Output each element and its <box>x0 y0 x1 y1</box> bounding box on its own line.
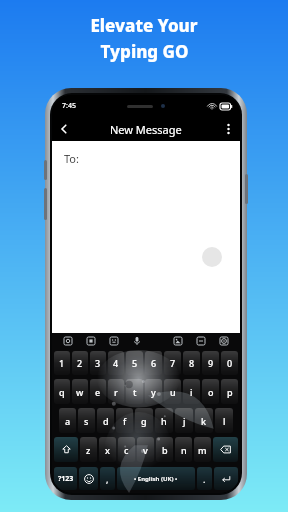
staticText: c <box>124 444 129 456</box>
button[interactable]: Back <box>52 117 76 141</box>
staticText: e <box>95 386 101 398</box>
staticText: 9 <box>208 357 214 369</box>
button[interactable]: ?123 <box>54 467 77 490</box>
staticText: m <box>198 444 207 456</box>
button[interactable]: n <box>175 437 192 462</box>
button[interactable]: f <box>116 408 133 433</box>
staticText: . <box>203 473 206 485</box>
button[interactable]: More options <box>216 117 240 141</box>
staticText: k <box>201 415 207 427</box>
button[interactable]: o <box>202 379 219 404</box>
staticText: 8 <box>189 357 195 369</box>
button[interactable]: 0 <box>221 351 238 375</box>
staticText: 4 <box>113 357 119 369</box>
button[interactable]: Space, English (UK) <box>117 467 195 490</box>
button[interactable]: u <box>164 379 181 404</box>
button[interactable]: 9 <box>202 351 219 375</box>
button[interactable]: r <box>108 379 124 404</box>
staticText: 6 <box>151 357 157 369</box>
staticText: j <box>183 415 186 427</box>
staticText: i <box>190 386 193 398</box>
button[interactable]: v <box>137 437 154 462</box>
staticText: l <box>223 415 226 427</box>
button[interactable]: m <box>194 437 211 462</box>
staticText: g <box>141 415 147 427</box>
staticText: 1 <box>59 357 65 369</box>
button[interactable]: e <box>90 379 106 404</box>
staticText: b <box>162 444 168 456</box>
button[interactable]: t <box>126 379 143 404</box>
staticText: 2 <box>77 357 83 369</box>
staticText: h <box>161 415 167 427</box>
button[interactable]: y <box>145 379 162 404</box>
button[interactable]: Theme <box>62 335 74 347</box>
button[interactable]: 7 <box>164 351 181 375</box>
button[interactable]: 6 <box>145 351 162 375</box>
staticText: f <box>123 415 127 427</box>
button[interactable]: w <box>72 379 88 404</box>
button[interactable]: 8 <box>183 351 200 375</box>
button[interactable]: l <box>215 408 233 433</box>
button[interactable]: Clipboard <box>85 335 97 347</box>
button[interactable]: h <box>155 408 173 433</box>
button[interactable]: i <box>183 379 200 404</box>
staticText: d <box>103 415 109 427</box>
button[interactable]: a <box>59 408 76 433</box>
button[interactable]: k <box>195 408 213 433</box>
staticText: 7:45 <box>62 101 76 111</box>
staticText: Typing GO <box>100 40 189 63</box>
button[interactable]: z <box>80 437 97 462</box>
button[interactable]: Shift <box>54 437 78 462</box>
staticText: , <box>106 473 109 485</box>
button[interactable]: Backspace <box>213 437 238 462</box>
button[interactable]: b <box>156 437 173 462</box>
button[interactable]: j <box>175 408 193 433</box>
staticText: w <box>76 386 84 398</box>
button[interactable]: 4 <box>108 351 124 375</box>
button[interactable]: 3 <box>90 351 106 375</box>
button[interactable]: d <box>97 408 114 433</box>
button[interactable]: Comma <box>100 467 115 490</box>
staticText: n <box>181 444 187 456</box>
button[interactable]: Emoji <box>79 467 98 490</box>
button[interactable]: x <box>99 437 116 462</box>
button[interactable]: Enter <box>214 467 238 490</box>
button[interactable]: c <box>118 437 135 462</box>
button[interactable]: p <box>221 379 238 404</box>
staticText: To: <box>64 151 79 166</box>
button[interactable]: Sticker <box>108 335 120 347</box>
button[interactable]: Settings <box>218 335 230 347</box>
button[interactable]: 1 <box>54 351 70 375</box>
button[interactable]: s <box>78 408 95 433</box>
button[interactable]: g <box>135 408 153 433</box>
staticText: 3 <box>95 357 101 369</box>
button[interactable]: 2 <box>72 351 88 375</box>
staticText: t <box>133 386 137 398</box>
button[interactable]: q <box>54 379 70 404</box>
staticText: q <box>59 386 65 398</box>
staticText: 7 <box>170 357 176 369</box>
staticText: a <box>65 415 71 427</box>
staticText: 0 <box>227 357 233 369</box>
staticText: y <box>151 386 156 398</box>
staticText: v <box>143 444 148 456</box>
staticText: s <box>84 415 89 427</box>
button[interactable]: Period <box>197 467 212 490</box>
staticText: Elevate Your <box>90 14 198 37</box>
staticText: z <box>86 444 91 456</box>
staticText: New Message <box>110 122 182 137</box>
button[interactable]: Voice input <box>131 335 143 347</box>
button[interactable]: GIF <box>195 335 207 347</box>
staticText: 5 <box>132 357 138 369</box>
staticText: x <box>105 444 110 456</box>
staticText: o <box>208 386 214 398</box>
staticText: u <box>170 386 176 398</box>
staticText: p <box>227 386 233 398</box>
staticText: r <box>114 386 118 398</box>
staticText: ?123 <box>58 474 74 484</box>
staticText: • English (UK) • <box>134 475 178 483</box>
button[interactable]: 5 <box>126 351 143 375</box>
button[interactable]: Gallery <box>172 335 184 347</box>
